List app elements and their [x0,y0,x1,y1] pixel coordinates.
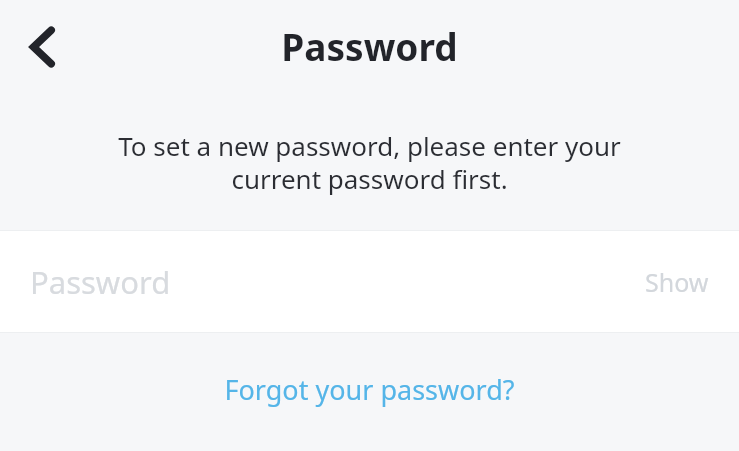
button[interactable]: Back [6,10,78,84]
button[interactable]: Password [0,230,739,333]
button[interactable]: Forgot your password? [202,361,537,418]
staticText: Password [30,261,171,303]
button[interactable]: Show [629,251,725,313]
staticText: Password [281,21,458,71]
staticText: Show [645,265,709,299]
staticText: To set a new password, please enter your… [92,128,647,197]
staticText: Forgot your password? [224,371,515,408]
